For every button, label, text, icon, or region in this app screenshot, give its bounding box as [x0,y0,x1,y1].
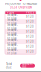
staticText: $120 [26,35,34,38]
staticText: Treatment plan [7,18,18,25]
staticText: PRICE [26,11,34,14]
staticText: Treatment plan [7,48,18,55]
staticText: Total due [6,62,12,69]
staticText: Treatment plan [7,23,18,30]
staticText: $120 [26,15,34,18]
staticText: $120 [26,40,34,43]
staticText: Treatment plan [7,38,18,45]
staticText: $120 [26,30,34,33]
staticText: $120 [26,25,34,28]
staticText: $120 [26,20,34,23]
staticText: Treatment plan [7,33,18,40]
staticText: Treatment plan [7,43,18,50]
staticText: THE JOURNEY TO WELLNESS [4,2,36,6]
button[interactable]: SUBSCRIBE [20,64,35,68]
staticText: 2024 OVERVIEW [9,6,31,9]
staticText: Treatment plan [7,13,18,20]
staticText: SUBSCRIBE [22,62,33,69]
staticText: $120 [26,50,34,53]
staticText: $120 [26,45,34,48]
staticText: Treatment plan [7,28,18,35]
staticText: PLAN [7,11,14,14]
